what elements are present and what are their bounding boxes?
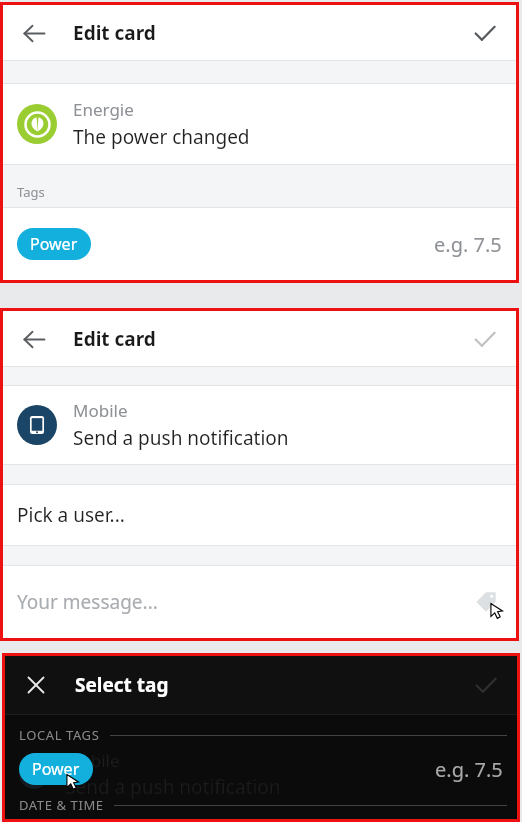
button[interactable]: Power xyxy=(17,228,91,260)
button[interactable]: Add tag xyxy=(475,591,497,613)
staticText: The power changed xyxy=(73,124,250,150)
staticText: Edit card xyxy=(73,326,156,352)
button[interactable]: Confirm xyxy=(468,16,502,50)
staticText: Tags xyxy=(17,183,45,201)
staticText: Energie xyxy=(73,98,134,121)
button[interactable]: Confirm xyxy=(468,322,502,356)
staticText: Your message... xyxy=(17,589,158,615)
staticText: Pick a user... xyxy=(17,502,125,528)
staticText: Mobile xyxy=(65,749,120,772)
button[interactable]: Close xyxy=(19,668,53,702)
staticText: Select tag xyxy=(75,672,169,698)
staticText: Power xyxy=(30,233,78,255)
button[interactable]: Confirm xyxy=(469,668,503,702)
button[interactable]: Pick a user... xyxy=(3,485,516,545)
button[interactable]: Power xyxy=(19,753,93,785)
staticText: e.g. 7.5 xyxy=(435,756,503,783)
button[interactable]: Energie xyxy=(3,84,516,164)
staticText: Send a push notification xyxy=(73,425,289,451)
button[interactable]: Mobile xyxy=(3,386,516,464)
staticText: e.g. 7.5 xyxy=(434,231,502,258)
staticText: Edit card xyxy=(73,20,156,46)
staticText: Mobile xyxy=(73,399,128,422)
staticText: Power xyxy=(32,758,80,780)
staticText: LOCAL TAGS xyxy=(19,726,100,744)
staticText: Send a push notification xyxy=(65,774,281,800)
button[interactable]: Back xyxy=(17,16,51,50)
button[interactable]: Back xyxy=(17,322,51,356)
staticText: DATE & TIME xyxy=(19,796,104,814)
